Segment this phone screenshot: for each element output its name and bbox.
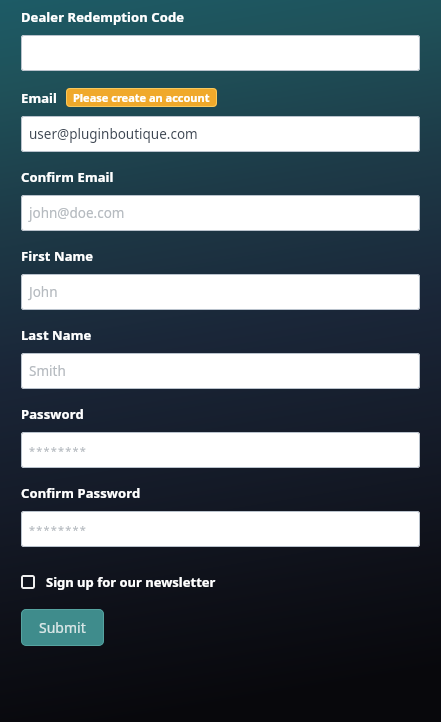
staticText: ******** bbox=[29, 443, 88, 458]
staticText: ******** bbox=[29, 522, 88, 537]
button[interactable]: Smith bbox=[21, 353, 420, 389]
button[interactable]: ******** bbox=[21, 432, 420, 468]
staticText: Submit bbox=[39, 618, 86, 637]
button[interactable]: Please create an account bbox=[66, 88, 217, 107]
staticText: First Name bbox=[21, 247, 94, 265]
staticText: user@pluginboutique.com bbox=[29, 125, 198, 143]
staticText: Dealer Redemption Code bbox=[21, 8, 185, 26]
button[interactable]: ******** bbox=[21, 511, 420, 547]
button[interactable] bbox=[21, 35, 420, 71]
staticText: Smith bbox=[29, 362, 66, 380]
staticText: Confirm Email bbox=[21, 168, 114, 186]
staticText: Password bbox=[21, 405, 84, 423]
button[interactable]: Sign up for our newsletter bbox=[21, 573, 216, 591]
button[interactable]: Submit bbox=[21, 609, 104, 646]
button[interactable]: user@pluginboutique.com bbox=[21, 116, 420, 152]
button[interactable]: john@doe.com bbox=[21, 195, 420, 231]
button[interactable]: John bbox=[21, 274, 420, 310]
staticText: john@doe.com bbox=[29, 204, 125, 222]
staticText: Last Name bbox=[21, 326, 92, 344]
staticText: John bbox=[29, 283, 58, 301]
staticText: Email bbox=[21, 89, 58, 107]
staticText: Sign up for our newsletter bbox=[46, 573, 216, 591]
staticText: Confirm Password bbox=[21, 484, 141, 502]
staticText: Please create an account bbox=[73, 90, 210, 105]
